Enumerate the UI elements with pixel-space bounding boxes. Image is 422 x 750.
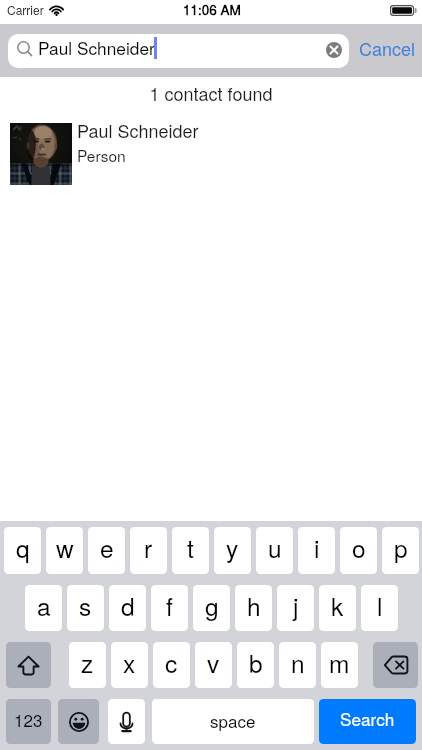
staticText: s	[79, 588, 92, 623]
staticText: w	[56, 530, 74, 565]
button[interactable]: k	[319, 585, 356, 631]
button[interactable]: Dictation	[108, 699, 145, 744]
button[interactable]: o	[340, 527, 377, 574]
staticText: h	[247, 588, 261, 623]
button[interactable]: b	[237, 642, 274, 688]
staticText: t	[187, 530, 194, 565]
button[interactable]: t	[172, 527, 209, 574]
staticText: o	[352, 530, 366, 565]
staticText: Search	[340, 706, 395, 731]
staticText: v	[207, 645, 220, 680]
button[interactable]: p	[382, 527, 419, 574]
staticText: i	[314, 530, 320, 565]
staticText: 11:06 AM	[183, 0, 241, 19]
button[interactable]: Emoji	[58, 699, 99, 744]
staticText: z	[81, 645, 94, 680]
button[interactable]: x	[111, 642, 148, 688]
staticText: q	[16, 530, 30, 565]
staticText: c	[165, 645, 178, 680]
button[interactable]: r	[130, 527, 167, 574]
staticText: p	[394, 530, 408, 565]
staticText: Paul Schneider	[77, 117, 199, 143]
button[interactable]: u	[256, 527, 293, 574]
staticText: j	[293, 588, 299, 623]
staticText: a	[37, 588, 51, 623]
button[interactable]: Paul Schneider	[0, 123, 422, 185]
staticText: b	[249, 645, 263, 680]
staticText: Person	[77, 144, 126, 166]
button[interactable]: s	[67, 585, 104, 631]
button[interactable]: z	[69, 642, 106, 688]
button[interactable]: m	[321, 642, 358, 688]
staticText: space	[210, 708, 256, 732]
staticText: l	[377, 588, 383, 623]
staticText: d	[121, 588, 135, 623]
button[interactable]: 123	[6, 699, 51, 744]
button[interactable]: y	[214, 527, 251, 574]
staticText: y	[226, 530, 239, 565]
button[interactable]: d	[109, 585, 146, 631]
button[interactable]: w	[46, 527, 83, 574]
button[interactable]: Paul Schneider	[8, 34, 349, 68]
staticText: Cancel	[359, 35, 416, 61]
button[interactable]: v	[195, 642, 232, 688]
staticText: u	[268, 530, 282, 565]
button[interactable]: j	[277, 585, 314, 631]
staticText: 1 contact found	[0, 80, 422, 106]
button[interactable]: Cancel	[349, 24, 422, 77]
staticText: f	[166, 588, 173, 623]
button[interactable]: l	[361, 585, 398, 631]
staticText: e	[100, 530, 114, 565]
button[interactable]: space	[152, 699, 314, 744]
staticText: Carrier	[7, 1, 44, 18]
button[interactable]: a	[25, 585, 62, 631]
staticText: r	[144, 530, 153, 565]
button[interactable]: g	[193, 585, 230, 631]
staticText: m	[329, 645, 350, 680]
button[interactable]: c	[153, 642, 190, 688]
button[interactable]: h	[235, 585, 272, 631]
staticText: 123	[14, 707, 43, 731]
button[interactable]: n	[279, 642, 316, 688]
button[interactable]: q	[4, 527, 41, 574]
staticText: g	[205, 588, 219, 623]
button[interactable]: i	[298, 527, 335, 574]
button[interactable]: Search	[319, 699, 416, 744]
button[interactable]: f	[151, 585, 188, 631]
staticText: x	[123, 645, 136, 680]
button[interactable]: Backspace	[373, 642, 418, 688]
button[interactable]: Shift	[6, 642, 51, 688]
staticText: Paul Schneider	[38, 35, 155, 60]
button[interactable]: Clear text	[321, 37, 347, 63]
staticText: n	[291, 645, 305, 680]
staticText: k	[331, 588, 344, 623]
button[interactable]: e	[88, 527, 125, 574]
